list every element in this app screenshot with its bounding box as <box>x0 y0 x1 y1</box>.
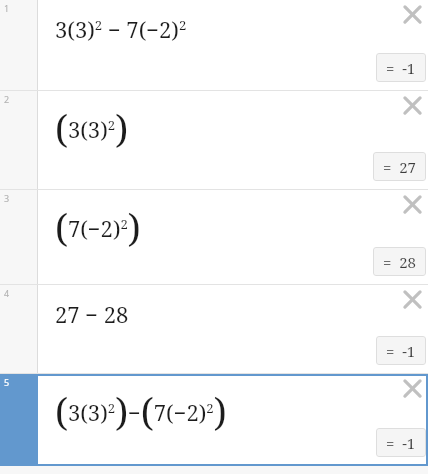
staticText: 4 <box>4 287 10 299</box>
button[interactable]: Delete expression <box>394 87 428 123</box>
staticText: 1 <box>4 2 10 14</box>
staticText: 2 <box>4 93 10 105</box>
button[interactable]: 1 <box>0 0 428 91</box>
staticText: 27 − 28 <box>55 299 129 329</box>
button[interactable]: = 28 <box>373 247 426 276</box>
button[interactable]: 4 <box>0 285 428 374</box>
staticText: 3 <box>4 192 10 204</box>
staticText: = -1 <box>386 341 416 361</box>
staticText: = 28 <box>383 252 416 272</box>
button[interactable]: = -1 <box>376 428 426 457</box>
staticText: (3(3)2)−(7(−2)2) <box>55 386 227 437</box>
staticText: = -1 <box>386 433 416 453</box>
button[interactable]: 3 <box>0 190 428 285</box>
button[interactable]: Delete expression <box>394 281 428 317</box>
staticText: (3(3)2) <box>55 103 129 154</box>
staticText: 3(3)2 − 7(−2)2 <box>55 14 187 44</box>
staticText: = -1 <box>386 58 416 78</box>
button[interactable]: Delete expression <box>394 0 428 32</box>
staticText: = 27 <box>383 157 416 177</box>
button[interactable]: = -1 <box>376 336 426 365</box>
button[interactable]: Delete expression <box>394 370 428 406</box>
button[interactable]: 2 <box>0 91 428 190</box>
button[interactable]: = -1 <box>376 53 426 82</box>
button[interactable]: = 27 <box>373 152 426 181</box>
staticText: (7(−2)2) <box>55 202 141 253</box>
button[interactable]: Delete expression <box>394 186 428 222</box>
button[interactable]: 5 <box>0 374 428 466</box>
staticText: 5 <box>4 376 10 388</box>
